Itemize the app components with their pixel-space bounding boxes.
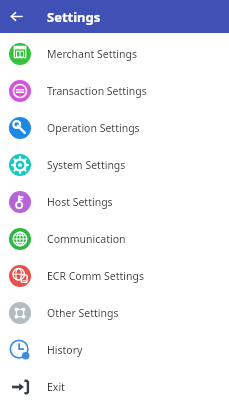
staticText: History <box>47 343 83 357</box>
button[interactable]: System Settings <box>0 146 229 183</box>
button[interactable]: Back <box>0 0 33 33</box>
button[interactable]: History <box>0 331 229 368</box>
button[interactable]: Operation Settings <box>0 109 229 146</box>
button[interactable]: Other Settings <box>0 294 229 331</box>
staticText: Transaction Settings <box>47 84 147 98</box>
staticText: Exit <box>47 380 65 394</box>
button[interactable]: Host Settings <box>0 183 229 220</box>
button[interactable]: Transaction Settings <box>0 72 229 109</box>
staticText: ECR Comm Settings <box>47 269 145 283</box>
staticText: Settings <box>47 8 101 26</box>
button[interactable]: ECR Comm Settings <box>0 257 229 294</box>
staticText: Merchant Settings <box>47 47 137 61</box>
button[interactable]: Exit <box>0 368 229 405</box>
staticText: Host Settings <box>47 195 113 209</box>
button[interactable]: Communication <box>0 220 229 257</box>
staticText: Other Settings <box>47 306 119 320</box>
staticText: Operation Settings <box>47 121 140 135</box>
staticText: System Settings <box>47 158 126 172</box>
button[interactable]: Merchant Settings <box>0 35 229 72</box>
staticText: Communication <box>47 232 126 246</box>
